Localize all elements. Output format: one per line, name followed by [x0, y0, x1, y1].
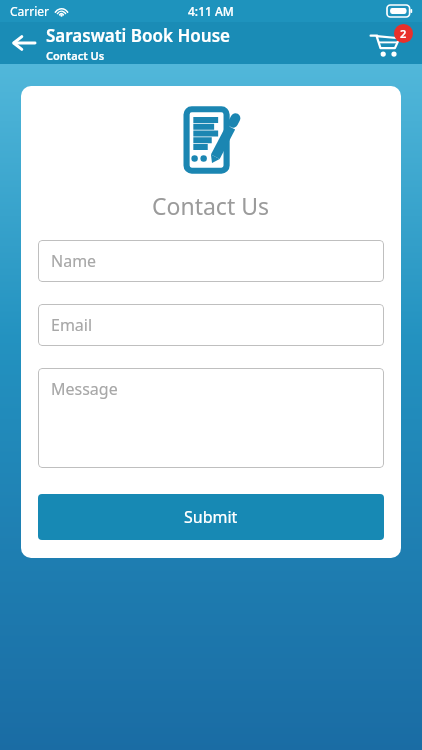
staticText: Message	[51, 378, 118, 400]
staticText: 4:11 AM	[188, 3, 234, 19]
staticText: Email	[51, 314, 93, 336]
staticText: Saraswati Book House	[46, 24, 230, 47]
staticText: Contact Us	[46, 48, 105, 63]
staticText: 2	[400, 26, 407, 41]
staticText: Contact Us	[152, 190, 270, 221]
button[interactable]: Email	[38, 304, 384, 346]
button[interactable]: Submit	[38, 494, 384, 540]
staticText: Carrier	[10, 3, 50, 19]
staticText: Submit	[184, 506, 238, 528]
button[interactable]: Back	[6, 25, 42, 61]
button[interactable]: Name	[38, 240, 384, 282]
button[interactable]: Message	[38, 368, 384, 468]
staticText: Name	[51, 250, 97, 272]
button[interactable]: Cart, 2 items	[368, 23, 414, 63]
